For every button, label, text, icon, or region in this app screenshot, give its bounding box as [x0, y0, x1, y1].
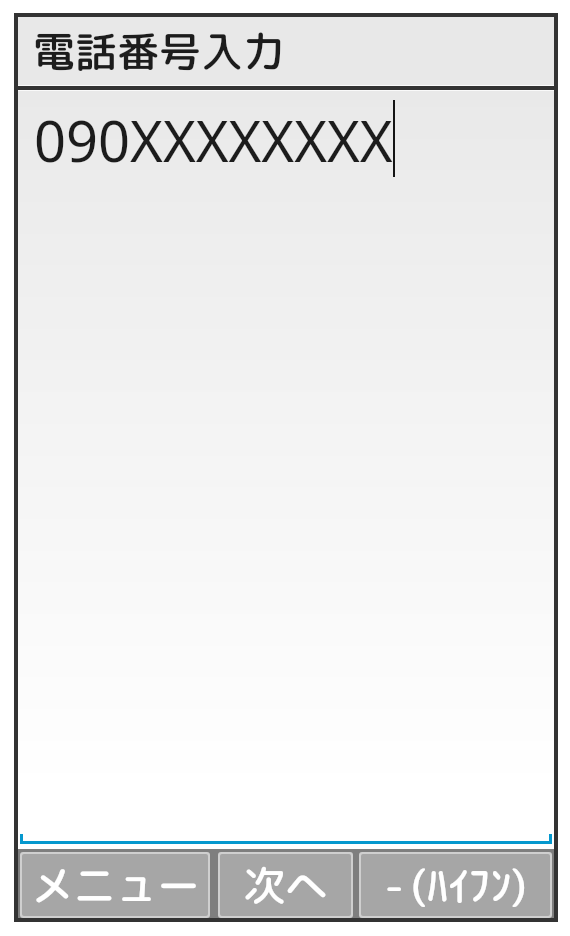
staticText: 電話番号入力	[33, 22, 286, 81]
button[interactable]: - (ﾊｲﾌﾝ)	[361, 854, 550, 916]
staticText: 090XXXXXXXX	[34, 102, 393, 178]
staticText: メニュー	[31, 856, 200, 915]
staticText: - (ﾊｲﾌﾝ)	[384, 856, 527, 915]
staticText: 次へ	[243, 856, 328, 915]
button[interactable]: 次へ	[220, 854, 351, 916]
button[interactable]: メニュー	[22, 854, 208, 916]
